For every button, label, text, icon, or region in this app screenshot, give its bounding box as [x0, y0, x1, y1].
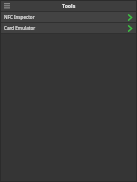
button[interactable]: NFC Inspector: [0, 12, 137, 22]
staticText: Card Emulator: [4, 25, 36, 31]
staticText: Tools: [62, 2, 76, 9]
button[interactable]: Card Emulator: [0, 23, 137, 33]
button[interactable]: Open navigation menu: [2, 1, 11, 10]
staticText: NFC Inspector: [4, 14, 35, 20]
